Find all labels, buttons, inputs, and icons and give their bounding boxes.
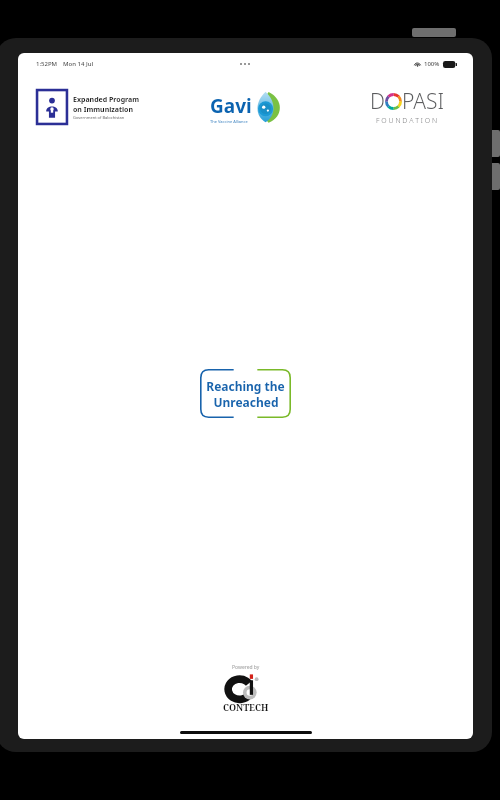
staticText: D — [370, 87, 385, 116]
staticText: PASI — [402, 87, 445, 116]
staticText: Reaching the — [206, 378, 285, 394]
staticText: F O U N D A T I O N — [376, 116, 438, 126]
other: Gavi, The Vaccine Alliance — [210, 87, 294, 127]
staticText: 1:52PM — [36, 60, 58, 68]
staticText: The Vaccine Alliance — [210, 119, 248, 124]
other: Contech logo — [227, 673, 265, 701]
staticText: Government of Balochistan — [73, 115, 125, 120]
button[interactable]: Reaching the — [200, 369, 291, 418]
staticText: Powered by — [232, 664, 260, 671]
staticText: Gavi — [210, 93, 252, 119]
staticText: CONTECH — [223, 701, 269, 713]
staticText: on Immunization — [73, 105, 134, 115]
staticText: Expanded Program — [73, 95, 140, 105]
staticText: 100% — [424, 60, 440, 68]
staticText: Unreached — [213, 394, 279, 410]
other: Dopasi Foundation — [359, 87, 455, 127]
other: Expanded Program on Immunization — [35, 86, 145, 128]
staticText: Mon 14 Jul — [63, 60, 94, 68]
